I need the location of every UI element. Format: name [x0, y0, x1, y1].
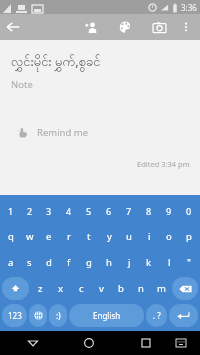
button[interactable]: x	[52, 277, 70, 300]
button[interactable]: 123	[2, 304, 27, 327]
staticText: y	[107, 230, 112, 243]
staticText: 9	[166, 205, 172, 217]
button[interactable]: v	[92, 277, 110, 300]
staticText: w	[26, 230, 34, 243]
staticText: 7	[126, 205, 132, 217]
button[interactable]: g	[80, 251, 98, 273]
button[interactable]: n	[132, 277, 150, 300]
button[interactable]: 1	[2, 200, 19, 221]
staticText: q	[8, 230, 14, 243]
button[interactable]: More options	[174, 15, 198, 39]
staticText: s	[27, 256, 32, 269]
staticText: r	[67, 230, 71, 243]
button[interactable]: t	[80, 225, 98, 247]
staticText: 1	[8, 205, 14, 217]
button[interactable]: . ?	[146, 304, 167, 327]
staticText: z	[38, 282, 43, 295]
button[interactable]: a	[2, 251, 19, 273]
button[interactable]: Add collaborator	[78, 14, 104, 40]
button[interactable]: Hide keyboard	[169, 331, 193, 355]
staticText: :)	[56, 310, 61, 321]
button[interactable]: 6	[100, 200, 118, 221]
button[interactable]: :)	[49, 304, 67, 327]
button[interactable]: e	[40, 225, 58, 247]
staticText: 123	[8, 310, 22, 321]
staticText: j	[128, 256, 131, 269]
button[interactable]: m	[152, 277, 170, 300]
button[interactable]: Change language	[29, 304, 47, 327]
button[interactable]: Remind me	[0, 121, 200, 143]
staticText: Note	[11, 78, 33, 91]
button[interactable]: 7	[120, 200, 138, 221]
button[interactable]: d	[40, 251, 58, 273]
button[interactable]: b	[112, 277, 130, 300]
button[interactable]: Back	[21, 331, 45, 355]
staticText: 3	[46, 205, 52, 217]
button[interactable]: Recents	[134, 331, 158, 355]
button[interactable]: p	[180, 225, 198, 247]
button[interactable]: i	[140, 225, 158, 247]
button[interactable]: j	[120, 251, 138, 273]
staticText: i	[148, 230, 151, 243]
staticText: English	[93, 310, 121, 321]
button[interactable]: h	[100, 251, 118, 273]
button[interactable]: Camera	[146, 14, 172, 40]
button[interactable]: u	[120, 225, 138, 247]
staticText: e	[46, 230, 52, 243]
button[interactable]: k	[140, 251, 158, 273]
staticText: k	[146, 256, 152, 269]
button[interactable]: Enter	[169, 304, 198, 327]
staticText: 5	[86, 205, 92, 217]
button[interactable]: Backspace	[172, 277, 198, 300]
staticText: 4	[66, 205, 72, 217]
staticText: 6	[106, 205, 112, 217]
staticText: t	[87, 230, 91, 243]
button[interactable]: z	[31, 277, 50, 300]
button[interactable]: Change color	[112, 14, 138, 40]
staticText: h	[106, 256, 112, 269]
button[interactable]: 8	[140, 200, 158, 221]
button[interactable]: English	[69, 304, 144, 327]
button[interactable]: "	[180, 251, 198, 273]
staticText: p	[186, 230, 192, 243]
staticText: လွှင်းမိုင်း မွှက်,စွခင်	[11, 52, 101, 72]
staticText: 8	[146, 205, 152, 217]
button[interactable]: o	[160, 225, 178, 247]
staticText: c	[79, 282, 84, 295]
staticText: Edited 3:34 pm	[137, 159, 190, 169]
button[interactable]: l	[160, 251, 178, 273]
staticText: o	[166, 230, 172, 243]
button[interactable]: w	[21, 225, 38, 247]
staticText: 0	[186, 205, 192, 217]
button[interactable]: y	[100, 225, 118, 247]
button[interactable]: q	[2, 225, 19, 247]
staticText: f	[67, 256, 71, 269]
staticText: v	[99, 282, 104, 295]
button[interactable]: s	[21, 251, 38, 273]
button[interactable]: c	[72, 277, 90, 300]
staticText: u	[126, 230, 132, 243]
staticText: m	[157, 282, 166, 295]
button[interactable]: 2	[21, 200, 38, 221]
button[interactable]: 4	[60, 200, 78, 221]
staticText: 2	[27, 205, 33, 217]
button[interactable]: r	[60, 225, 78, 247]
button[interactable]: 0	[180, 200, 198, 221]
button[interactable]: 3	[40, 200, 58, 221]
button[interactable]: Shift	[2, 277, 29, 300]
staticText: x	[58, 282, 64, 295]
button[interactable]: 5	[80, 200, 98, 221]
staticText: 3:36	[181, 2, 197, 13]
button[interactable]: f	[60, 251, 78, 273]
staticText: Remind me	[37, 126, 89, 139]
button[interactable]: Home	[77, 331, 101, 355]
staticText: g	[86, 256, 92, 269]
button[interactable]: 9	[160, 200, 178, 221]
staticText: b	[118, 282, 124, 295]
staticText: . ?	[153, 310, 161, 321]
staticText: n	[138, 282, 144, 295]
staticText: d	[46, 256, 52, 269]
staticText: l	[168, 256, 171, 269]
staticText: a	[8, 256, 14, 269]
button[interactable]: Back	[0, 14, 26, 40]
